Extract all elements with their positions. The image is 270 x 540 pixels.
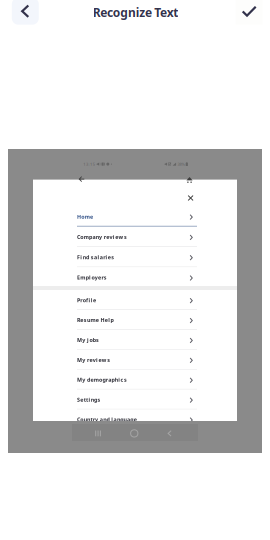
staticText: Recognize Text (93, 4, 178, 20)
staticText: Settings (77, 396, 100, 403)
staticText: 38% (177, 161, 184, 167)
button[interactable]: Country and language (33, 410, 237, 429)
button[interactable]: My jobs (33, 330, 237, 350)
button[interactable]: Home (33, 206, 237, 227)
button[interactable]: Profile (33, 290, 237, 310)
button[interactable]: Employers (33, 267, 237, 288)
button[interactable]: Settings (33, 390, 237, 410)
staticText: Employers (77, 274, 107, 281)
staticText: Find salaries (77, 254, 114, 261)
staticText: Country and language (77, 416, 137, 423)
button[interactable]: Find salaries (33, 247, 237, 267)
staticText: Company reviews (77, 233, 127, 240)
staticText: My demographics (77, 376, 127, 383)
staticText: Profile (77, 297, 96, 304)
staticText: Resume Help (77, 316, 113, 324)
staticText: Home (77, 213, 93, 220)
staticText: 13:15 (83, 161, 95, 167)
button[interactable]: Resume Help (33, 310, 237, 330)
button[interactable]: Done (236, 0, 263, 25)
button[interactable]: Back (12, 0, 39, 25)
button[interactable]: My demographics (33, 370, 237, 390)
staticText: My jobs (77, 336, 99, 343)
button[interactable]: My reviews (33, 350, 237, 370)
button[interactable]: Company reviews (33, 227, 237, 247)
button[interactable]: Close (184, 191, 198, 205)
staticText: My reviews (77, 356, 110, 363)
